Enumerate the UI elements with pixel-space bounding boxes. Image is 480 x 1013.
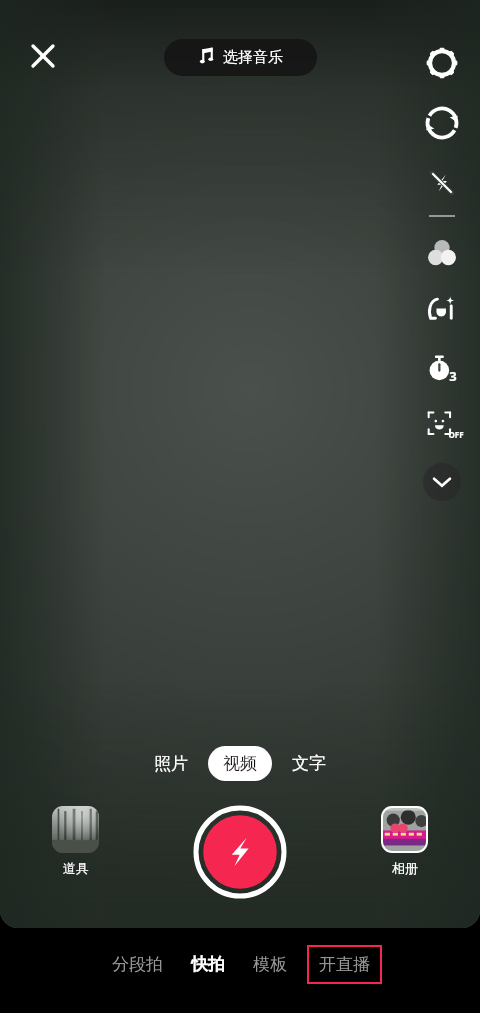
button[interactable]: 照片 — [140, 747, 202, 780]
button[interactable]: Face detection off — [420, 403, 464, 447]
staticText: 道具 — [63, 860, 89, 876]
button[interactable]: 快拍 — [177, 945, 239, 984]
staticText: OFF — [448, 429, 464, 440]
button[interactable]: Close — [21, 34, 65, 78]
staticText: 模板 — [253, 954, 287, 975]
button[interactable]: Settings — [419, 40, 465, 86]
staticText: 3 — [449, 367, 457, 385]
button[interactable]: Timer 3 seconds — [420, 346, 464, 390]
staticText: 选择音乐 — [223, 48, 283, 67]
staticText: 视频 — [223, 753, 257, 774]
staticText: 照片 — [154, 753, 188, 774]
button[interactable]: Beauty — [420, 288, 464, 332]
button[interactable]: Filters — [420, 231, 464, 275]
button[interactable]: 文字 — [278, 747, 340, 780]
button[interactable]: 道具 — [52, 806, 99, 876]
button[interactable]: Flash off — [420, 161, 464, 205]
staticText: 相册 — [392, 860, 418, 876]
staticText: 分段拍 — [112, 954, 163, 975]
button[interactable]: 相册 — [381, 806, 428, 876]
staticText: 快拍 — [191, 954, 225, 975]
button[interactable]: Collapse tools — [423, 463, 461, 501]
button[interactable]: Record — [194, 806, 286, 898]
button[interactable]: Flip camera — [420, 101, 464, 145]
button[interactable]: 选择音乐 — [164, 39, 317, 76]
button[interactable]: 开直播 — [307, 945, 382, 984]
staticText: 开直播 — [319, 954, 370, 975]
staticText: 文字 — [292, 753, 326, 774]
button[interactable]: 分段拍 — [98, 945, 177, 984]
button[interactable]: 视频 — [208, 746, 272, 781]
button[interactable]: 模板 — [239, 945, 301, 984]
